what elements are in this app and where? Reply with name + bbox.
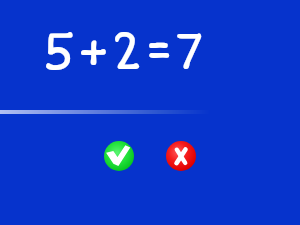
button[interactable]: Correct — [104, 141, 134, 171]
staticText: 5+2=7 — [41, 19, 205, 84]
button[interactable]: Wrong — [166, 141, 196, 171]
